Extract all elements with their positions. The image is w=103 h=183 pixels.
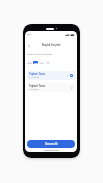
button[interactable]: Hepsi [27, 61, 32, 64]
button[interactable]: Aylık [33, 61, 38, 64]
staticText: Aylık [34, 62, 38, 64]
staticText: Toplam Tutar [29, 72, 46, 75]
staticText: ₺ 1.250,00 [29, 76, 40, 79]
staticText: Hepsi [27, 62, 32, 64]
staticText: Devam Et [45, 142, 58, 146]
staticText: ₺ 2.500,00 [29, 88, 40, 91]
staticText: Yıl [47, 62, 49, 64]
button[interactable]: Toplam Tutar [27, 71, 76, 80]
staticText: 3 Ay [40, 62, 44, 64]
button[interactable]: Toplam Tutar [27, 83, 76, 92]
staticText: Hedef Tahsis Seçeneği [27, 52, 52, 55]
staticText: Başlık Seçimi [42, 43, 61, 47]
button[interactable]: Yıl [45, 61, 50, 64]
button[interactable]: Devam Et [27, 140, 75, 148]
button[interactable]: Back [26, 43, 31, 48]
staticText: Toplam Tutar [29, 84, 46, 87]
button[interactable]: 3 Ay [39, 61, 44, 64]
staticText: 9:41 [27, 33, 32, 36]
